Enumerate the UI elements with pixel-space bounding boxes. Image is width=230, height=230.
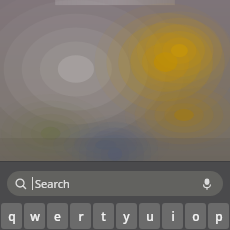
button[interactable]: o xyxy=(185,203,206,229)
staticText: r xyxy=(78,208,84,224)
staticText: Search xyxy=(35,176,70,191)
button[interactable]: e xyxy=(47,203,68,229)
staticText: e xyxy=(54,208,61,224)
staticText: w xyxy=(30,208,40,224)
button[interactable]: Voice search xyxy=(199,176,215,192)
staticText: i xyxy=(171,208,175,224)
button[interactable]: q xyxy=(1,203,22,229)
button[interactable]: p xyxy=(208,203,229,229)
staticText: q xyxy=(8,208,16,224)
button[interactable]: y xyxy=(116,203,137,229)
staticText: p xyxy=(215,208,223,224)
staticText: y xyxy=(123,208,130,224)
staticText: o xyxy=(192,208,200,224)
button[interactable]: u xyxy=(139,203,160,229)
button[interactable]: i xyxy=(162,203,183,229)
button[interactable]: w xyxy=(24,203,45,229)
button[interactable]: Search xyxy=(7,171,223,196)
staticText: t xyxy=(101,208,106,224)
button[interactable]: r xyxy=(70,203,91,229)
button[interactable]: t xyxy=(93,203,114,229)
staticText: u xyxy=(146,208,154,224)
